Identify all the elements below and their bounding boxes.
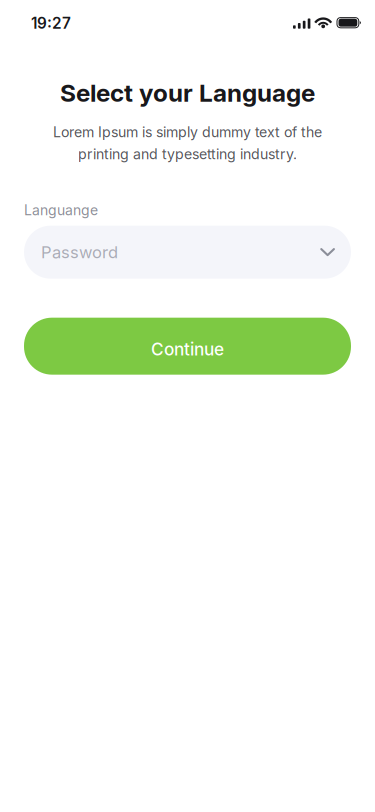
button[interactable]: Continue bbox=[24, 318, 351, 375]
staticText: 19:27 bbox=[31, 14, 71, 33]
staticText: Lorem Ipsum is simply dummy text of the bbox=[53, 123, 322, 141]
button[interactable]: Password bbox=[24, 226, 351, 279]
staticText: Continue bbox=[151, 339, 224, 360]
staticText: Languange bbox=[24, 202, 98, 219]
staticText: Select your Language bbox=[60, 78, 315, 107]
staticText: Password bbox=[41, 242, 118, 262]
staticText: printing and typesetting industry. bbox=[78, 146, 297, 163]
